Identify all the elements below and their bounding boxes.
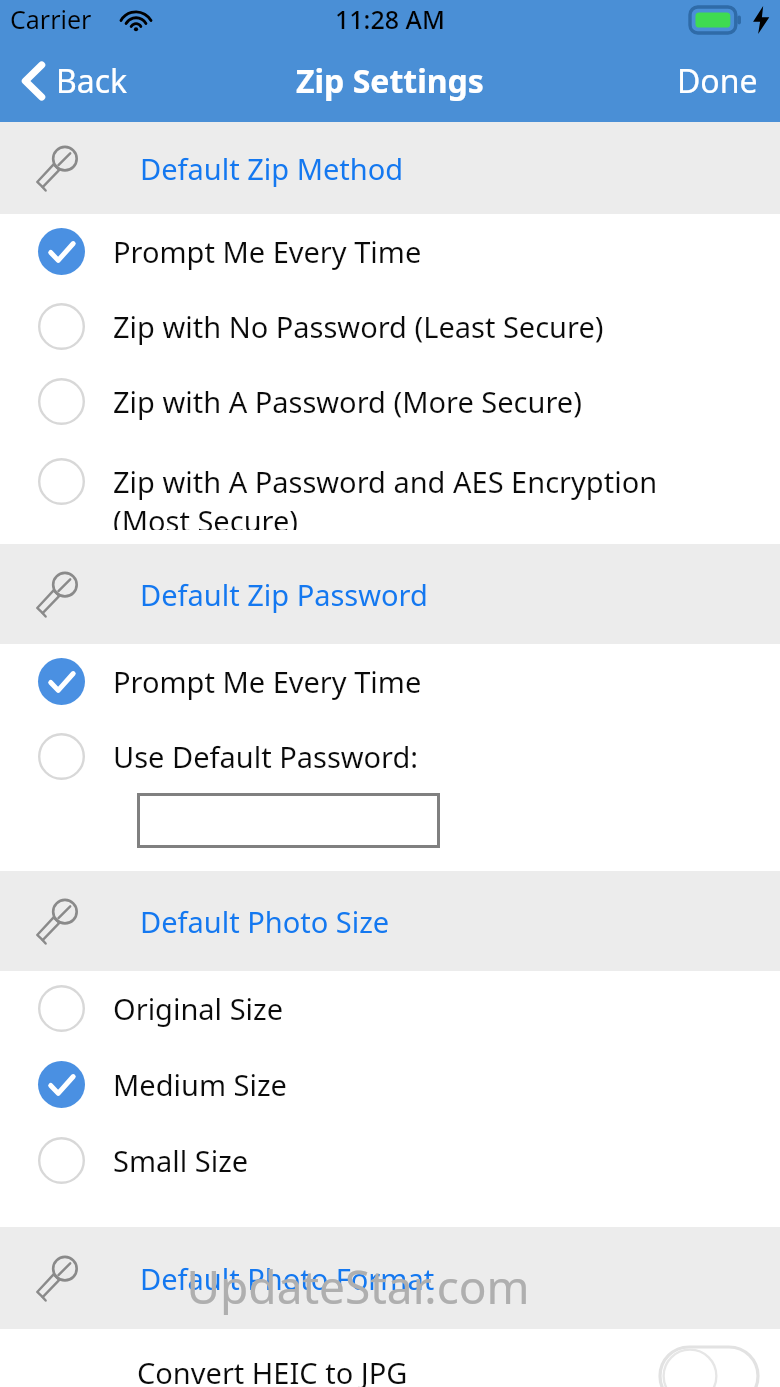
staticText: Default Zip Method bbox=[140, 149, 404, 188]
button[interactable]: Prompt Me Every Time bbox=[0, 658, 780, 733]
button[interactable]: Zip with A Password and AES Encryption (… bbox=[0, 446, 780, 530]
button[interactable]: Small Size bbox=[0, 1137, 780, 1213]
staticText: Prompt Me Every Time bbox=[113, 232, 422, 271]
staticText: UpdateStar.com bbox=[186, 1255, 530, 1318]
button[interactable]: Medium Size bbox=[0, 1061, 780, 1137]
staticText: Zip Settings bbox=[296, 59, 484, 103]
button[interactable]: Done bbox=[655, 40, 780, 122]
staticText: Original Size bbox=[113, 989, 284, 1028]
staticText: Zip with A Password and AES Encryption (… bbox=[113, 462, 658, 530]
staticText: Done bbox=[677, 59, 758, 103]
button[interactable]: Use Default Password: bbox=[0, 733, 780, 793]
button[interactable]: Zip with A Password (More Secure) bbox=[0, 378, 780, 446]
staticText: Carrier bbox=[10, 2, 92, 36]
staticText: Default Photo Size bbox=[140, 902, 390, 941]
staticText: Default Zip Password bbox=[140, 575, 428, 614]
button[interactable]: Convert HEIC to JPG bbox=[0, 1329, 780, 1387]
button[interactable] bbox=[137, 793, 440, 848]
staticText: Zip with A Password (More Secure) bbox=[113, 382, 582, 421]
staticText: 11:28 AM bbox=[335, 2, 445, 36]
button[interactable]: Convert HEIC to JPG toggle bbox=[660, 1347, 758, 1387]
button[interactable]: Zip with No Password (Least Secure) bbox=[0, 303, 780, 378]
staticText: Default Photo Format bbox=[140, 1259, 435, 1298]
staticText: Use Default Password: bbox=[113, 737, 419, 776]
staticText: Small Size bbox=[113, 1141, 249, 1180]
button[interactable]: Original Size bbox=[0, 985, 780, 1061]
staticText: Medium Size bbox=[113, 1065, 287, 1104]
button[interactable]: Back bbox=[0, 40, 142, 122]
staticText: Zip with No Password (Least Secure) bbox=[113, 307, 604, 346]
button[interactable]: Prompt Me Every Time bbox=[0, 228, 780, 303]
staticText: Prompt Me Every Time bbox=[113, 662, 422, 701]
staticText: Back bbox=[56, 59, 128, 103]
staticText: Convert HEIC to JPG bbox=[137, 1353, 408, 1387]
